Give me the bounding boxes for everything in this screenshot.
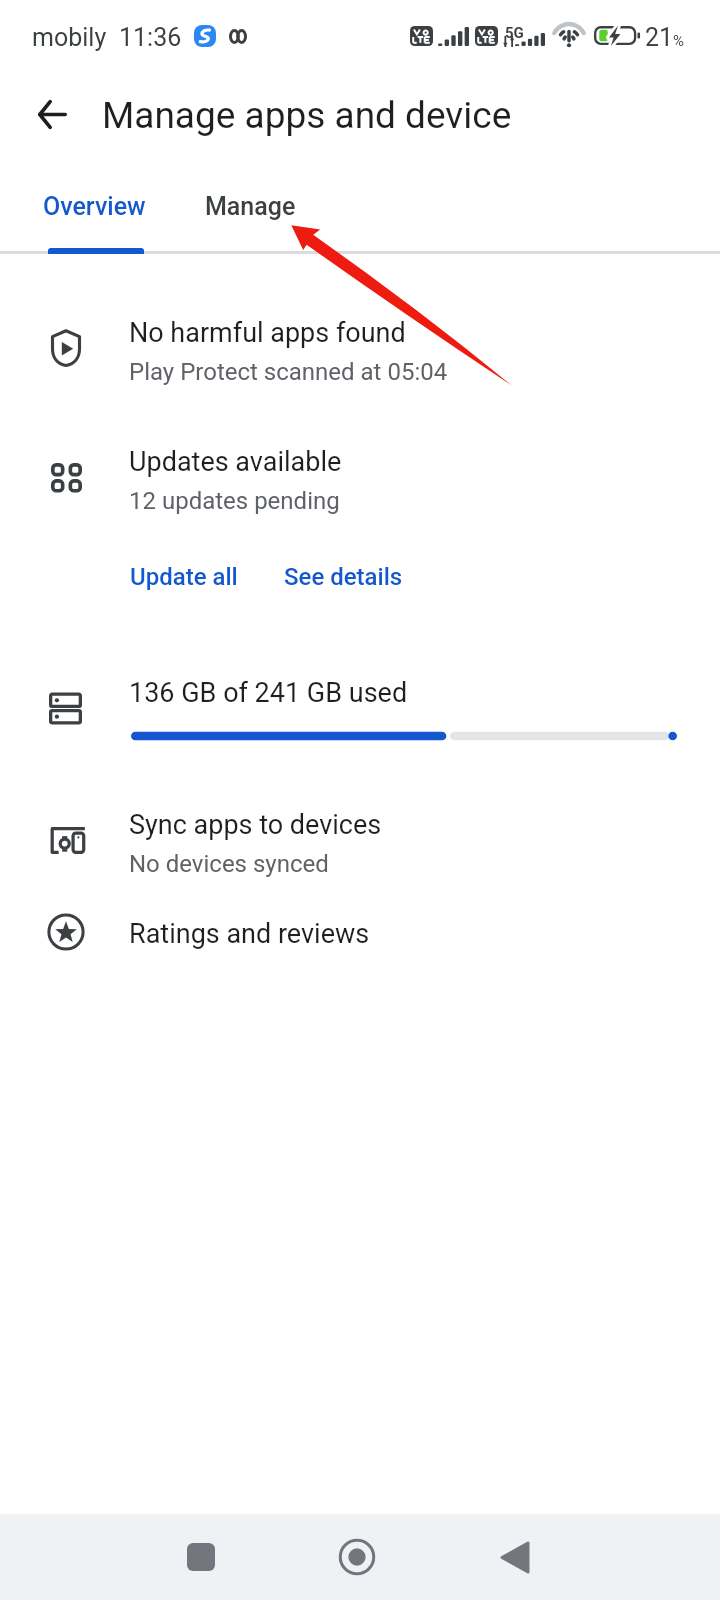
button[interactable]: Home	[321, 1521, 393, 1593]
button[interactable]	[0, 898, 720, 984]
staticText: No devices synced	[129, 850, 329, 878]
button[interactable]: Update all	[118, 547, 258, 605]
staticText: Overview	[43, 192, 146, 221]
button[interactable]: See details	[272, 547, 426, 605]
staticText: Manage	[205, 192, 296, 221]
staticText: Updates available	[129, 446, 342, 478]
staticText: 136 GB of 241 GB used	[129, 677, 408, 709]
button[interactable]	[0, 660, 720, 760]
staticText: Sync apps to devices	[129, 809, 382, 841]
staticText: No harmful apps found	[129, 317, 406, 349]
staticText: 11:36	[119, 23, 182, 52]
staticText: Play Protect scanned at 05:04	[129, 358, 448, 386]
button[interactable]	[0, 790, 720, 886]
staticText: See details	[284, 563, 403, 591]
button[interactable]	[0, 425, 720, 521]
staticText: Manage apps and device	[102, 94, 512, 137]
button[interactable]: Back	[32, 94, 72, 134]
staticText: mobily	[32, 23, 107, 52]
staticText: 5G	[505, 24, 524, 42]
staticText: Ratings and reviews	[129, 918, 370, 950]
staticText: %	[673, 32, 684, 50]
button[interactable]	[0, 296, 720, 392]
button[interactable]: Recent apps	[165, 1521, 237, 1593]
staticText: Update all	[130, 563, 238, 591]
staticText: 12 updates pending	[129, 487, 340, 515]
staticText: 21	[645, 23, 674, 52]
button[interactable]: Manage	[192, 154, 358, 252]
button[interactable]: Back	[478, 1521, 550, 1593]
button[interactable]: Overview	[0, 154, 192, 252]
